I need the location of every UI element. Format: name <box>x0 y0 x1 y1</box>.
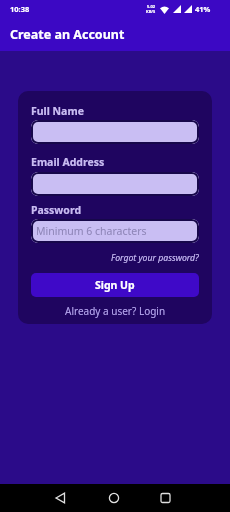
staticText: 10:38 <box>10 4 30 14</box>
staticText: 5.02 <box>147 4 155 9</box>
staticText: Password <box>31 203 82 217</box>
staticText: Full Name <box>31 104 84 118</box>
staticText: KB/S <box>146 9 156 14</box>
button[interactable] <box>31 172 199 196</box>
button[interactable] <box>88 484 140 512</box>
staticText: Create an Account <box>10 26 125 43</box>
staticText: Email Address <box>31 155 105 169</box>
button[interactable] <box>31 120 199 144</box>
button[interactable]: Minimum 6 characters <box>31 219 199 243</box>
staticText: 41% <box>195 4 211 14</box>
button[interactable]: Already a user? Login <box>65 304 166 318</box>
staticText: Sign Up <box>95 278 135 292</box>
button[interactable]: Forgot your password? <box>111 252 199 264</box>
button[interactable] <box>34 484 86 512</box>
staticText: Minimum 6 characters <box>36 224 147 238</box>
button[interactable] <box>140 484 192 512</box>
button[interactable]: Sign Up <box>31 273 199 297</box>
